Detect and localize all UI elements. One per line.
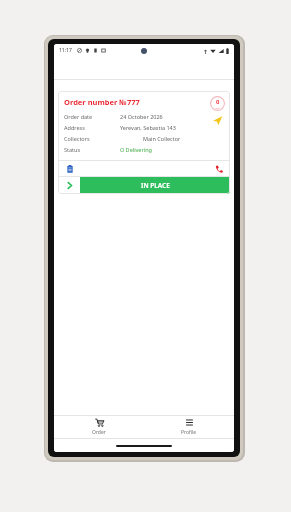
staticText: IN PLACE [141,181,170,190]
staticText: Order date [64,113,93,120]
button[interactable]: Profile [144,416,234,438]
staticText: Address [64,124,85,131]
staticText: Profile [181,429,197,436]
staticText: О Delivering [120,146,152,153]
staticText: 24 October 2026 [120,113,163,120]
button[interactable]: Expand [58,177,80,194]
button[interactable]: Call [212,162,225,175]
button[interactable]: Order number №777 [58,91,230,194]
staticText: 11:17 [59,47,72,54]
staticText: min [215,106,220,109]
button[interactable]: Navigate [212,115,223,126]
staticText: Order number №777 [64,97,140,107]
staticText: Collectors [64,135,90,142]
staticText: Main Collector [143,135,181,142]
button[interactable]: IN PLACE [80,177,230,194]
staticText: 0 [216,98,220,106]
button[interactable]: Order details [63,162,76,175]
staticText: Order [92,429,106,436]
staticText: Yerevan, Sebastia 143 [120,124,176,131]
button[interactable]: Order [54,416,144,438]
staticText: Status [64,146,81,153]
